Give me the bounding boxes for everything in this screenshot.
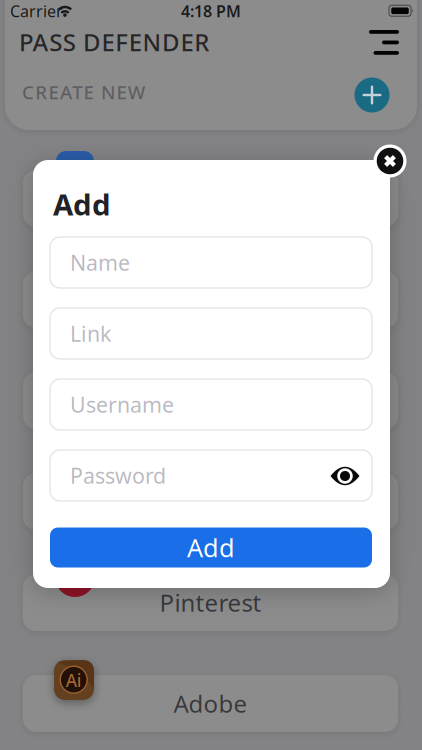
button[interactable]: Saved entry — [23, 170, 398, 227]
button[interactable]: Add — [50, 527, 372, 567]
button[interactable]: Link — [50, 308, 372, 359]
staticText: Pinterest — [159, 587, 261, 618]
button[interactable]: Pinterest — [23, 574, 398, 631]
button[interactable]: Add password — [354, 77, 389, 112]
staticText: PASS DEFENDER — [19, 26, 209, 58]
button[interactable]: Show password — [330, 466, 359, 486]
button[interactable]: Saved entry — [23, 372, 398, 429]
button[interactable]: Close — [373, 144, 406, 177]
staticText: Password — [70, 461, 166, 490]
button[interactable]: Username — [50, 379, 372, 430]
staticText: 4:18 PM — [181, 0, 241, 22]
button[interactable]: Saved entry — [23, 271, 398, 328]
button[interactable]: Menu — [369, 30, 399, 55]
staticText: Add — [53, 184, 111, 223]
button[interactable]: Saved entry — [23, 473, 398, 530]
staticText: Add — [187, 531, 235, 564]
staticText: Ai — [66, 669, 82, 692]
staticText: CREATE NEW — [22, 80, 146, 104]
button[interactable]: Adobe — [23, 675, 398, 732]
staticText: Adobe — [173, 688, 247, 719]
button[interactable]: Name — [50, 237, 372, 288]
staticText: Link — [70, 319, 111, 348]
button[interactable]: Password — [50, 450, 372, 501]
staticText: Name — [70, 248, 130, 277]
staticText: Username — [70, 390, 174, 419]
staticText: Carrier — [10, 0, 63, 22]
